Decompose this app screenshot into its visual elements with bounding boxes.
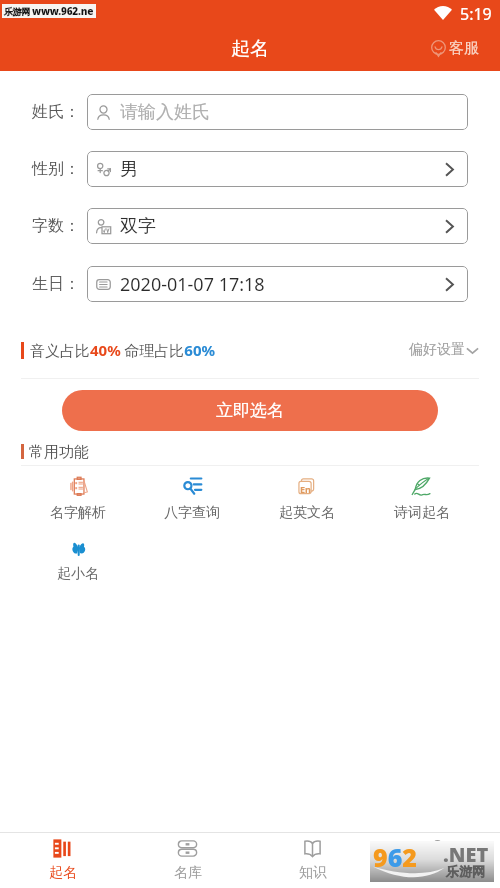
staticText: 962 bbox=[373, 840, 417, 874]
staticText: 常用功能 bbox=[29, 443, 89, 460]
button[interactable]: 起名 bbox=[0, 833, 125, 888]
staticText: 乐游网 bbox=[446, 863, 485, 879]
staticText: 起名 bbox=[231, 37, 269, 61]
staticText: 起名 bbox=[49, 864, 77, 882]
button[interactable]: 起小名 bbox=[21, 534, 135, 583]
staticText: 起小名 bbox=[57, 565, 99, 583]
staticText: 请输入姓氏 bbox=[120, 101, 210, 124]
staticText: 姓氏： bbox=[32, 102, 80, 122]
button[interactable]: 名字解析 bbox=[21, 473, 135, 522]
button[interactable]: 客服 customer service bbox=[430, 39, 479, 58]
staticText: 客服 bbox=[449, 39, 479, 58]
staticText: 我的 bbox=[424, 864, 452, 882]
staticText: www.962.net bbox=[32, 4, 96, 18]
staticText: 名字解析 bbox=[50, 504, 106, 522]
button[interactable]: En bbox=[249, 473, 364, 522]
button[interactable]: 名库 bbox=[125, 833, 250, 888]
button[interactable]: 知识 bbox=[250, 833, 375, 888]
staticText: En bbox=[300, 483, 311, 495]
button[interactable]: 姓氏： bbox=[0, 94, 500, 130]
staticText: 知识 bbox=[299, 864, 327, 882]
staticText: 偏好设置 bbox=[409, 341, 465, 359]
staticText: 性别： bbox=[32, 159, 80, 179]
button[interactable]: 字数： bbox=[0, 208, 500, 244]
button[interactable]: 八字查询 bbox=[135, 473, 249, 522]
staticText: 双字 bbox=[120, 215, 156, 238]
staticText: 生日： bbox=[32, 274, 80, 294]
staticText: 名库 bbox=[174, 864, 202, 882]
staticText: 起英文名 bbox=[279, 504, 335, 522]
button[interactable]: 诗词起名 bbox=[364, 473, 479, 522]
staticText: 乐游网 bbox=[4, 6, 30, 17]
staticText: 男 bbox=[120, 158, 138, 181]
staticText: 2020-01-07 17:18 bbox=[120, 272, 265, 297]
button[interactable]: 立即选名 bbox=[62, 390, 438, 431]
staticText: 5:19 bbox=[460, 3, 492, 25]
staticText: 字数： bbox=[32, 216, 80, 236]
button[interactable]: 偏好设置 bbox=[409, 341, 479, 359]
staticText: 诗词起名 bbox=[394, 504, 450, 522]
staticText: 音义占比40% 命理占比60% bbox=[30, 340, 216, 360]
staticText: 八字查询 bbox=[164, 504, 220, 522]
staticText: .NET bbox=[443, 841, 489, 868]
button[interactable]: 性别： bbox=[0, 151, 500, 187]
button[interactable]: 我的 bbox=[375, 833, 500, 888]
button[interactable]: 生日： bbox=[0, 266, 500, 302]
staticText: 立即选名 bbox=[216, 400, 284, 421]
